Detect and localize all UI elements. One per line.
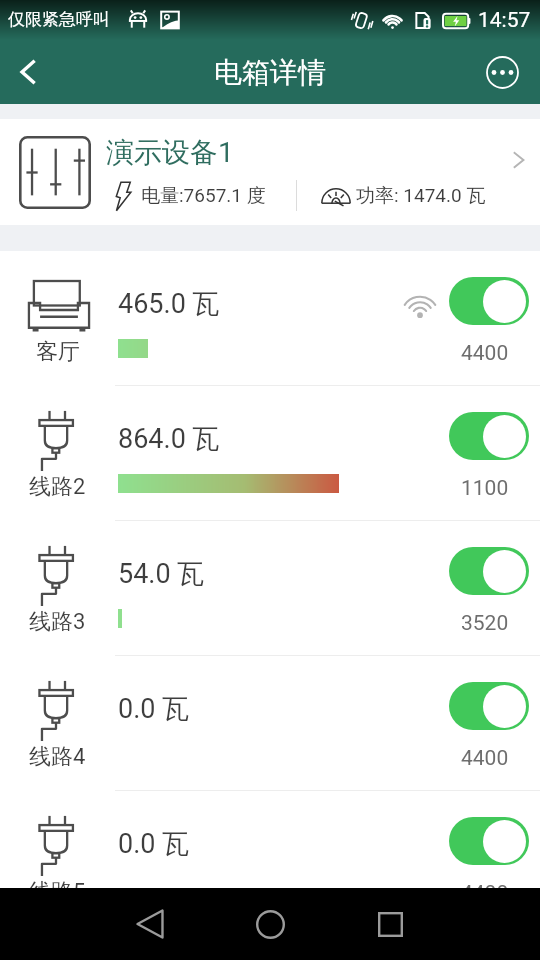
button[interactable]: Back <box>122 896 178 952</box>
button[interactable]: Toggle power <box>449 682 529 730</box>
staticText: 线路2 <box>29 473 86 501</box>
staticText: 465.0 瓦 <box>118 287 220 321</box>
button[interactable]: Toggle power <box>449 817 529 865</box>
button[interactable]: Toggle power <box>449 277 529 325</box>
button[interactable]: 线路2 <box>0 386 540 520</box>
staticText: 3520 <box>461 611 509 636</box>
staticText: 线路3 <box>29 608 86 636</box>
button[interactable]: More options <box>482 52 522 92</box>
staticText: 电量:7657.1 度 <box>141 184 266 208</box>
staticText: 4400 <box>461 341 509 366</box>
button[interactable]: 线路3 <box>0 521 540 655</box>
staticText: 864.0 瓦 <box>118 422 220 456</box>
button[interactable]: 线路4 <box>0 656 540 790</box>
button[interactable]: 客厅 <box>0 251 540 385</box>
staticText: 4400 <box>461 881 509 906</box>
staticText: 1100 <box>461 476 509 501</box>
staticText: 0.0 瓦 <box>118 692 190 726</box>
staticText: 客厅 <box>36 338 80 366</box>
button[interactable]: Home <box>242 896 298 952</box>
staticText: 14:57 <box>478 8 531 33</box>
staticText: 54.0 瓦 <box>118 557 205 591</box>
button[interactable]: Back <box>0 44 56 100</box>
button[interactable]: Toggle power <box>449 547 529 595</box>
staticText: 4400 <box>461 746 509 771</box>
staticText: 线路5 <box>29 878 86 906</box>
staticText: 仅限紧急呼叫 <box>8 9 110 30</box>
button[interactable]: Recent apps <box>362 896 418 952</box>
button[interactable]: Toggle power <box>449 412 529 460</box>
staticText: 线路4 <box>29 743 86 771</box>
staticText: 功率: 1474.0 瓦 <box>356 184 486 208</box>
staticText: 演示设备1 <box>106 135 234 170</box>
staticText: 电箱详情 <box>214 55 326 90</box>
button[interactable]: 线路5 <box>0 791 540 925</box>
button[interactable]: 演示设备1 <box>0 119 540 225</box>
staticText: 0.0 瓦 <box>118 827 190 861</box>
